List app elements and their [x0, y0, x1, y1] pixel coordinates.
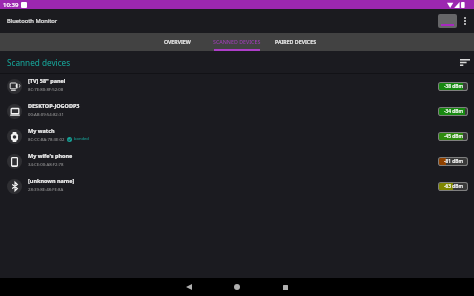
staticText: Scanned devices: [7, 57, 71, 68]
button[interactable]: [TV] 58" panel: [0, 74, 474, 99]
staticText: My wife's phone: [28, 152, 73, 159]
staticText: -45 dBm: [444, 133, 463, 140]
button[interactable]: My watch: [0, 124, 474, 149]
staticText: 28:39:8E:48:FE:8A: [28, 186, 64, 192]
staticText: -34 dBm: [444, 108, 463, 115]
staticText: 8C:CC:BA:78:3E:02: [28, 136, 65, 142]
staticText: DESKTOP-JOGODP3: [28, 102, 80, 109]
button[interactable]: SCANNED DEVICES: [207, 33, 267, 51]
staticText: 00:AB:09:54:82:31: [28, 111, 64, 117]
staticText: 10:39: [3, 1, 19, 9]
staticText: [TV] 58" panel: [28, 77, 66, 84]
staticText: 34:CE:00:A8:F2:78: [28, 161, 64, 167]
button[interactable]: DESKTOP-JOGODP3: [0, 99, 474, 124]
button[interactable]: More options: [461, 12, 469, 30]
button[interactable]: Toggle Bluetooth scanning: [438, 14, 457, 28]
staticText: -81 dBm: [444, 158, 463, 165]
button[interactable]: Back: [165, 278, 213, 296]
button[interactable]: OVERVIEW: [148, 33, 207, 51]
staticText: PAIRED DEVICES: [275, 38, 317, 45]
button[interactable]: Sort devices: [458, 56, 471, 69]
button[interactable]: [unknown name]: [0, 174, 474, 199]
button[interactable]: My wife's phone: [0, 149, 474, 174]
button[interactable]: Home: [213, 278, 261, 296]
staticText: SCANNED DEVICES: [213, 38, 261, 45]
staticText: Bluetooth Monitor: [7, 17, 58, 25]
staticText: bonded: [74, 136, 89, 142]
button[interactable]: Recent apps: [261, 278, 309, 296]
staticText: 8C:7E:80:8F:52:08: [28, 86, 64, 92]
staticText: My watch: [28, 127, 55, 134]
staticText: OVERVIEW: [164, 38, 191, 45]
staticText: -38 dBm: [444, 83, 463, 90]
staticText: -63 dBm: [444, 183, 463, 190]
staticText: [unknown name]: [28, 177, 75, 184]
button[interactable]: PAIRED DEVICES: [267, 33, 325, 51]
